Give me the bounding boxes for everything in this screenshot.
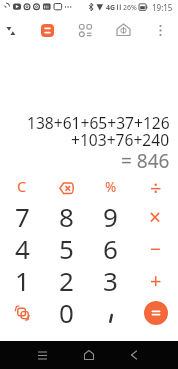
button[interactable]	[88, 297, 133, 329]
button[interactable]: ÷	[133, 172, 178, 201]
staticText: 3	[103, 263, 118, 295]
button[interactable]	[114, 21, 133, 40]
button[interactable]	[32, 345, 52, 365]
button[interactable]: ×	[133, 201, 178, 233]
button[interactable]: 2	[44, 265, 88, 297]
staticText: 7	[15, 199, 30, 231]
button[interactable]: 1	[0, 265, 44, 297]
staticText: 0	[59, 295, 74, 327]
staticText: %	[105, 178, 117, 196]
staticText: 9	[103, 199, 118, 231]
button[interactable]: 8	[44, 201, 88, 233]
button[interactable]	[0, 297, 44, 329]
button[interactable]: +	[133, 265, 178, 297]
staticText: −	[150, 236, 161, 262]
button[interactable]	[151, 21, 170, 40]
button[interactable]	[44, 172, 88, 201]
button[interactable]: %	[88, 172, 133, 201]
staticText: 8	[59, 199, 74, 231]
button[interactable]: C	[0, 172, 44, 201]
staticText: 26%	[123, 3, 137, 13]
button[interactable]	[2, 21, 22, 41]
staticText: 5	[59, 231, 74, 263]
button[interactable]: 9	[88, 201, 133, 233]
staticText: = 846	[121, 148, 170, 174]
staticText: ×	[149, 203, 162, 232]
button[interactable]	[124, 345, 144, 365]
button[interactable]: 7	[0, 201, 44, 233]
staticText: ÷	[150, 174, 162, 201]
button[interactable]	[76, 21, 95, 40]
button[interactable]	[79, 345, 99, 365]
button[interactable]: −	[133, 233, 178, 265]
staticText: 1	[15, 263, 30, 295]
button[interactable]	[38, 21, 57, 40]
button[interactable]: 4	[0, 233, 44, 265]
button[interactable]: 5	[44, 233, 88, 265]
button[interactable]: 0	[44, 297, 88, 329]
button[interactable]: 3	[88, 265, 133, 297]
staticText: +	[150, 267, 162, 294]
staticText: 138+61+65+37+126	[27, 112, 170, 133]
staticText: C	[17, 176, 27, 196]
staticText: +103+76+240	[71, 129, 170, 150]
staticText: 2	[59, 263, 74, 295]
button[interactable]: 6	[88, 233, 133, 265]
button[interactable]	[133, 297, 178, 329]
staticText: 6	[103, 231, 118, 263]
staticText: 4	[15, 231, 30, 263]
staticText: 4G	[106, 3, 116, 13]
staticText: 19:15	[152, 2, 173, 13]
